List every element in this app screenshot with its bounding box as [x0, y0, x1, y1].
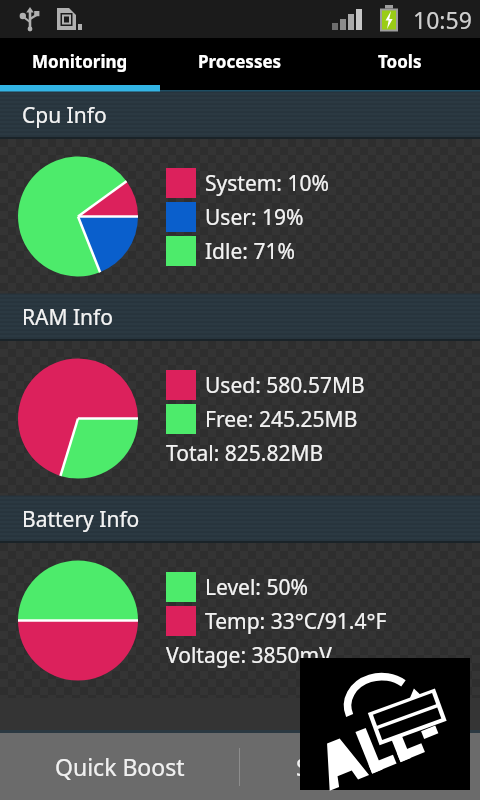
staticText: Temp: 33°C/91.4°F: [205, 607, 387, 636]
staticText: Tools: [378, 50, 422, 73]
button[interactable]: Tools: [320, 38, 480, 85]
button[interactable]: Processes: [160, 38, 320, 85]
staticText: System: 10%: [205, 169, 329, 198]
staticText: Free: 245.25MB: [205, 405, 358, 434]
staticText: Processes: [198, 50, 282, 73]
staticText: Monitoring: [32, 50, 128, 73]
button[interactable]: Monitoring: [0, 38, 160, 85]
staticText: Voltage: 3850mV: [166, 641, 332, 670]
staticText: Total: 825.82MB: [166, 439, 324, 468]
staticText: Battery Info: [22, 505, 140, 534]
staticText: 10:59: [413, 4, 472, 35]
staticText: Used: 580.57MB: [205, 371, 365, 400]
staticText: Idle: 71%: [205, 237, 295, 266]
staticText: RAM Info: [22, 303, 114, 332]
other: Watermark: [300, 658, 470, 790]
button[interactable]: Quick Boost: [0, 733, 239, 800]
staticText: System Info: [296, 751, 424, 782]
staticText: Cpu Info: [22, 101, 107, 130]
staticText: Quick Boost: [55, 751, 185, 782]
button[interactable]: System Info: [240, 733, 480, 800]
staticText: Level: 50%: [205, 573, 308, 602]
staticText: User: 19%: [205, 203, 304, 232]
